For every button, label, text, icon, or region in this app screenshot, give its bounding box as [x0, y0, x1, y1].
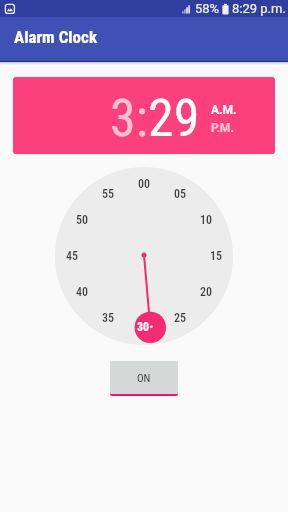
- staticText: Alarm Clock: [14, 27, 98, 47]
- button[interactable]: ON: [110, 361, 178, 396]
- staticText: 58%: [195, 1, 220, 16]
- staticText: ON: [137, 372, 151, 385]
- staticText: 40: [76, 285, 89, 299]
- button[interactable]: A.M.: [211, 103, 237, 117]
- staticText: 00: [138, 177, 151, 191]
- staticText: 05: [174, 187, 187, 201]
- button[interactable]: 00: [55, 167, 233, 345]
- staticText: 30: [137, 320, 150, 334]
- staticText: 8:29 p.m.: [232, 1, 286, 16]
- button[interactable]: P.M.: [211, 121, 234, 135]
- staticText: 35: [102, 311, 115, 325]
- staticText: 29: [148, 88, 200, 149]
- staticText: 15: [210, 249, 223, 263]
- staticText: 55: [102, 187, 115, 201]
- staticText: 45: [66, 249, 79, 263]
- staticText: 50: [76, 213, 89, 227]
- button[interactable]: 3:: [13, 77, 275, 154]
- staticText: 20: [200, 285, 213, 299]
- staticText: 25: [174, 311, 187, 325]
- staticText: 10: [200, 213, 213, 227]
- staticText: 3:: [110, 88, 148, 149]
